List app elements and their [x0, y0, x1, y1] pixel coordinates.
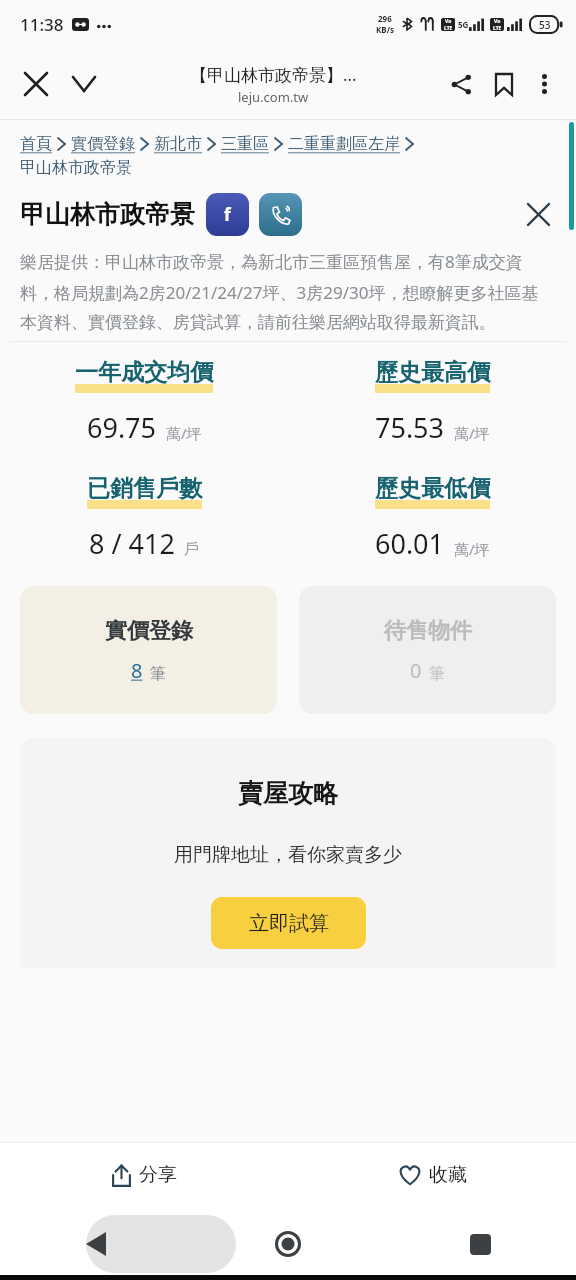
staticText: 收藏 [429, 1163, 467, 1187]
button[interactable]: 首頁 [20, 134, 52, 154]
staticText: 0 [410, 657, 422, 684]
button[interactable]: Back [0, 1208, 192, 1280]
staticText: LTE [493, 25, 502, 31]
button[interactable]: Expand [60, 60, 108, 108]
staticText: 待售物件 [384, 617, 472, 645]
button[interactable]: 待售物件 [299, 586, 556, 714]
staticText: 296 [378, 13, 392, 24]
button[interactable]: Home [192, 1208, 384, 1280]
staticText: Vo [445, 18, 452, 25]
staticText: 歷史最高價 [375, 358, 490, 387]
staticText: 立即試算 [249, 911, 329, 936]
button[interactable]: 分享 [0, 1142, 288, 1208]
button[interactable]: Bookmark [484, 64, 524, 104]
button[interactable]: Share [438, 61, 484, 107]
staticText: LTE [444, 25, 453, 31]
staticText: 樂居提供：甲山林市政帝景，為新北市三重區預售屋，有8筆成交資料，格局規劃為2房2… [20, 250, 550, 333]
staticText: 11:38 [20, 13, 64, 36]
button[interactable]: 新北市 [154, 134, 202, 154]
button[interactable]: Close [12, 60, 60, 108]
staticText: 戶 [184, 540, 199, 559]
staticText: f [224, 203, 231, 226]
staticText: 8 [131, 657, 143, 684]
staticText: Vo [494, 18, 501, 25]
staticText: 筆 [429, 664, 445, 684]
staticText: 萬/坪 [454, 423, 490, 443]
button[interactable]: Dismiss [516, 192, 560, 236]
button[interactable]: Recent apps [384, 1208, 576, 1280]
staticText: 分享 [139, 1163, 177, 1187]
staticText: 甲山林市政帝景 [20, 199, 195, 230]
button[interactable]: 甲山林市政帝景 [20, 158, 132, 178]
button[interactable]: More options [524, 64, 564, 104]
staticText: 實價登錄 [105, 617, 193, 645]
button[interactable]: 立即試算 [211, 897, 366, 949]
button[interactable]: 收藏 [288, 1142, 576, 1208]
staticText: 【甲山林市政帝景】… [190, 63, 357, 86]
staticText: 8 / 412 [89, 525, 175, 562]
staticText: 賣屋攻略 [238, 778, 338, 809]
staticText: 53 [539, 18, 551, 32]
button[interactable]: 二重重劃區左岸 [288, 134, 400, 154]
staticText: 60.01 [375, 525, 445, 562]
staticText: KB/s [376, 24, 394, 35]
staticText: 歷史最低價 [375, 474, 490, 503]
staticText: 已銷售戶數 [87, 474, 202, 503]
staticText: 用門牌地址，看你家賣多少 [174, 843, 402, 867]
button[interactable]: Call [259, 193, 302, 236]
button[interactable]: Facebook [206, 193, 249, 236]
staticText: 萬/坪 [166, 423, 202, 443]
button[interactable]: 實價登錄 [71, 134, 135, 154]
staticText: 75.53 [375, 409, 445, 446]
staticText: leju.com.tw [238, 88, 309, 106]
staticText: 萬/坪 [454, 539, 490, 559]
staticText: 69.75 [87, 409, 157, 446]
staticText: 一年成交均價 [75, 358, 213, 387]
staticText: 筆 [150, 664, 166, 684]
button[interactable]: 實價登錄 [20, 586, 277, 714]
staticText: 5G [458, 19, 469, 30]
button[interactable]: 三重區 [221, 134, 269, 154]
